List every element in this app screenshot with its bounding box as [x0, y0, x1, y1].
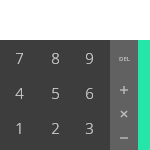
button[interactable]: DEL	[110, 40, 138, 78]
button[interactable]: Plus	[110, 78, 138, 102]
staticText: 9	[85, 48, 94, 68]
staticText: DEL	[119, 55, 130, 63]
staticText: 4	[15, 83, 24, 103]
staticText: 1	[15, 118, 24, 138]
staticText: 5	[51, 83, 60, 103]
staticText: 3	[85, 118, 94, 138]
button[interactable]: 5	[38, 75, 72, 110]
button[interactable]: 6	[72, 75, 106, 110]
staticText: 7	[15, 48, 24, 68]
staticText: 8	[51, 48, 60, 68]
button[interactable]: 2	[38, 110, 72, 145]
button[interactable]: Multiply	[110, 102, 138, 126]
button[interactable]: 4	[0, 75, 38, 110]
button[interactable]: 8	[38, 40, 72, 75]
button[interactable]: 1	[0, 110, 38, 145]
button[interactable]: Minus	[110, 126, 138, 150]
button[interactable]: 7	[0, 40, 38, 75]
staticText: 2	[51, 118, 60, 138]
button[interactable]: 3	[72, 110, 106, 145]
staticText: 6	[85, 83, 94, 103]
button[interactable]: 9	[72, 40, 106, 75]
